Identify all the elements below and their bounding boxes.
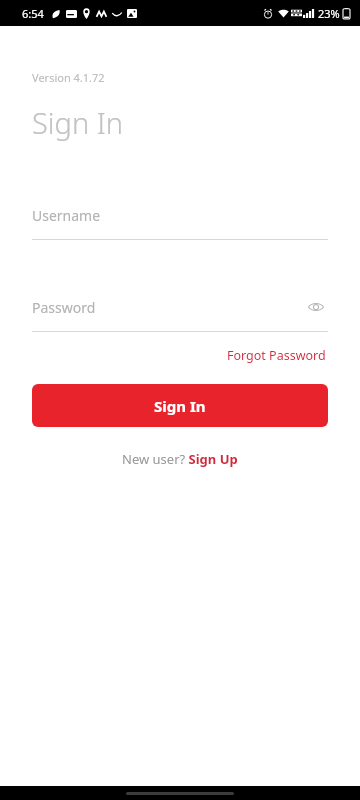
button[interactable]: Show password: [304, 296, 328, 318]
staticText: Forgot Password: [227, 347, 326, 364]
staticText: Username: [32, 206, 328, 225]
button[interactable]: Sign In: [32, 384, 328, 427]
staticText: 23%: [318, 6, 340, 21]
staticText: New user? Sign Up: [122, 450, 238, 468]
staticText: Version 4.1.72: [32, 70, 105, 85]
button[interactable]: New user? Sign Up: [120, 447, 240, 471]
staticText: Password: [32, 298, 304, 317]
staticText: Sign In: [154, 396, 206, 416]
button[interactable]: Forgot Password: [225, 344, 328, 367]
staticText: 6:54: [22, 6, 44, 21]
staticText: Sign In: [32, 103, 124, 142]
